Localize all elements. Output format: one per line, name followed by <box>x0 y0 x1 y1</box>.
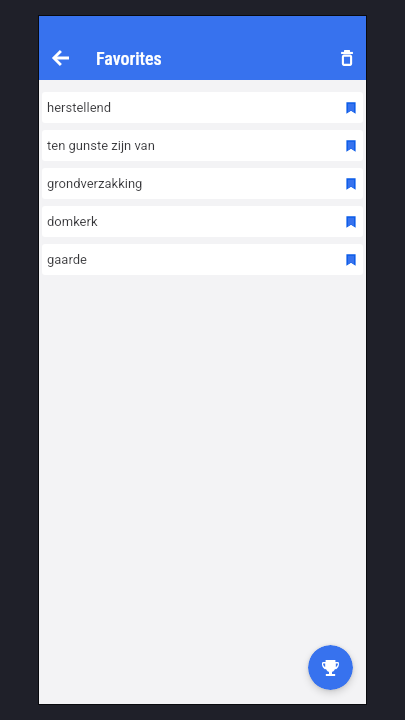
button[interactable]: Bookmark <box>341 174 361 194</box>
button[interactable]: grondverzakking <box>42 168 363 199</box>
button[interactable]: gaarde <box>42 244 363 275</box>
button[interactable]: Delete all <box>330 41 364 75</box>
button[interactable]: Bookmark <box>341 136 361 156</box>
button[interactable]: herstellend <box>42 92 363 123</box>
button[interactable]: Back <box>44 41 78 75</box>
staticText: domkerk <box>47 214 341 229</box>
button[interactable]: Achievements <box>308 645 353 690</box>
button[interactable]: ten gunste zijn van <box>42 130 363 161</box>
button[interactable]: Bookmark <box>341 250 361 270</box>
button[interactable]: Bookmark <box>341 98 361 118</box>
staticText: Favorites <box>96 48 162 69</box>
staticText: grondverzakking <box>47 176 341 191</box>
staticText: gaarde <box>47 252 341 267</box>
button[interactable]: Bookmark <box>341 212 361 232</box>
staticText: ten gunste zijn van <box>47 138 341 153</box>
button[interactable]: domkerk <box>42 206 363 237</box>
staticText: herstellend <box>47 100 341 115</box>
